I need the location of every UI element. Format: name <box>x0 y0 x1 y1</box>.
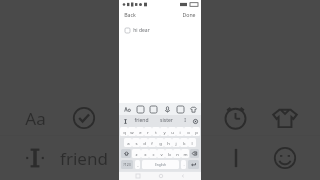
staticText: v <box>160 151 163 157</box>
staticText: u <box>171 129 174 135</box>
staticText: sister <box>160 117 173 124</box>
staticText: n <box>176 151 179 157</box>
staticText: Back <box>124 11 136 18</box>
button[interactable]: GIF <box>148 104 158 114</box>
button[interactable]: Shift <box>121 149 131 158</box>
staticText: q <box>123 129 126 135</box>
button[interactable]: y <box>160 127 168 136</box>
button[interactable]: Backspace <box>190 149 199 158</box>
button[interactable]: Emoji <box>273 146 297 170</box>
staticText: English <box>155 163 166 167</box>
button[interactable]: Settings <box>188 104 198 114</box>
button[interactable]: m <box>181 149 189 158</box>
staticText: . <box>183 162 185 168</box>
button[interactable]: u <box>168 127 176 136</box>
staticText: , <box>137 162 139 168</box>
button[interactable]: Space <box>142 160 179 169</box>
button[interactable]: Text formatting <box>18 107 52 129</box>
button[interactable]: i <box>176 127 184 136</box>
button[interactable]: k <box>180 138 188 147</box>
button[interactable]: Alarm <box>223 105 248 130</box>
staticText: r <box>147 129 149 135</box>
staticText: g <box>159 140 162 146</box>
staticText: friend <box>134 117 149 124</box>
button[interactable]: b <box>165 149 173 158</box>
staticText: ?123 <box>123 162 131 167</box>
staticText: d <box>143 140 146 146</box>
staticText: Aa <box>25 107 46 129</box>
button[interactable]: w <box>128 127 136 136</box>
button[interactable]: Clipboard <box>175 104 185 114</box>
staticText: w <box>130 129 134 135</box>
button[interactable]: I <box>178 117 191 124</box>
button[interactable]: l <box>188 138 196 147</box>
staticText: p <box>195 129 198 135</box>
button[interactable]: ?123 <box>121 160 133 169</box>
button[interactable]: h <box>164 138 172 147</box>
button[interactable]: j <box>172 138 180 147</box>
staticText: I <box>184 117 186 124</box>
button[interactable]: r <box>144 127 152 136</box>
button[interactable]: a <box>124 138 132 147</box>
staticText: k <box>183 140 186 146</box>
button[interactable]: , <box>135 160 140 169</box>
button[interactable]: Home <box>156 171 165 180</box>
staticText: e <box>139 129 142 135</box>
button[interactable]: Voice input <box>162 104 172 114</box>
staticText: h <box>167 140 170 146</box>
button[interactable]: p <box>192 127 200 136</box>
staticText: o <box>187 129 190 135</box>
button[interactable]: Back <box>178 171 187 180</box>
button[interactable]: o <box>184 127 192 136</box>
staticText: l <box>191 140 193 146</box>
button[interactable]: hi dear <box>125 26 201 35</box>
button[interactable]: Stickers <box>135 104 145 114</box>
staticText: a <box>127 140 130 146</box>
button[interactable]: s <box>132 138 140 147</box>
staticText: friend <box>60 147 108 170</box>
button[interactable]: c <box>149 149 157 158</box>
staticText: s <box>135 140 138 146</box>
button[interactable]: z <box>132 149 141 158</box>
button[interactable]: Enter <box>188 160 199 169</box>
button[interactable]: friend <box>59 146 109 170</box>
button[interactable]: Keyboard settings <box>191 117 199 125</box>
staticText: x <box>144 151 147 157</box>
button[interactable]: e <box>136 127 144 136</box>
staticText: i <box>179 129 181 135</box>
button[interactable]: n <box>173 149 181 158</box>
staticText: c <box>152 151 155 157</box>
staticText: j <box>175 140 177 146</box>
staticText: z <box>135 151 138 157</box>
staticText: f <box>151 140 153 146</box>
button[interactable]: Text cursor <box>25 145 45 171</box>
button[interactable]: Text formatting <box>122 104 132 114</box>
button[interactable]: d <box>140 138 148 147</box>
staticText: m <box>183 151 188 157</box>
staticText: Done <box>182 11 196 18</box>
button[interactable] <box>231 146 241 170</box>
button[interactable]: . <box>181 160 186 169</box>
staticText: t <box>155 129 157 135</box>
button[interactable]: t <box>152 127 160 136</box>
button[interactable]: Clothing sticker <box>271 106 299 130</box>
staticText: b <box>168 151 171 157</box>
button[interactable]: Recents <box>133 171 142 180</box>
button[interactable]: Done <box>181 10 197 19</box>
button[interactable]: f <box>148 138 156 147</box>
staticText: hi dear <box>133 27 150 34</box>
button[interactable]: q <box>120 127 128 136</box>
staticText: y <box>163 129 166 135</box>
button[interactable]: Text cursor <box>121 117 129 125</box>
button[interactable]: sister <box>154 117 178 124</box>
button[interactable]: x <box>141 149 149 158</box>
button[interactable]: v <box>157 149 165 158</box>
button[interactable]: Back <box>123 10 137 19</box>
button[interactable]: Confirm <box>72 106 96 130</box>
button[interactable]: friend <box>129 117 154 124</box>
button[interactable]: g <box>156 138 164 147</box>
